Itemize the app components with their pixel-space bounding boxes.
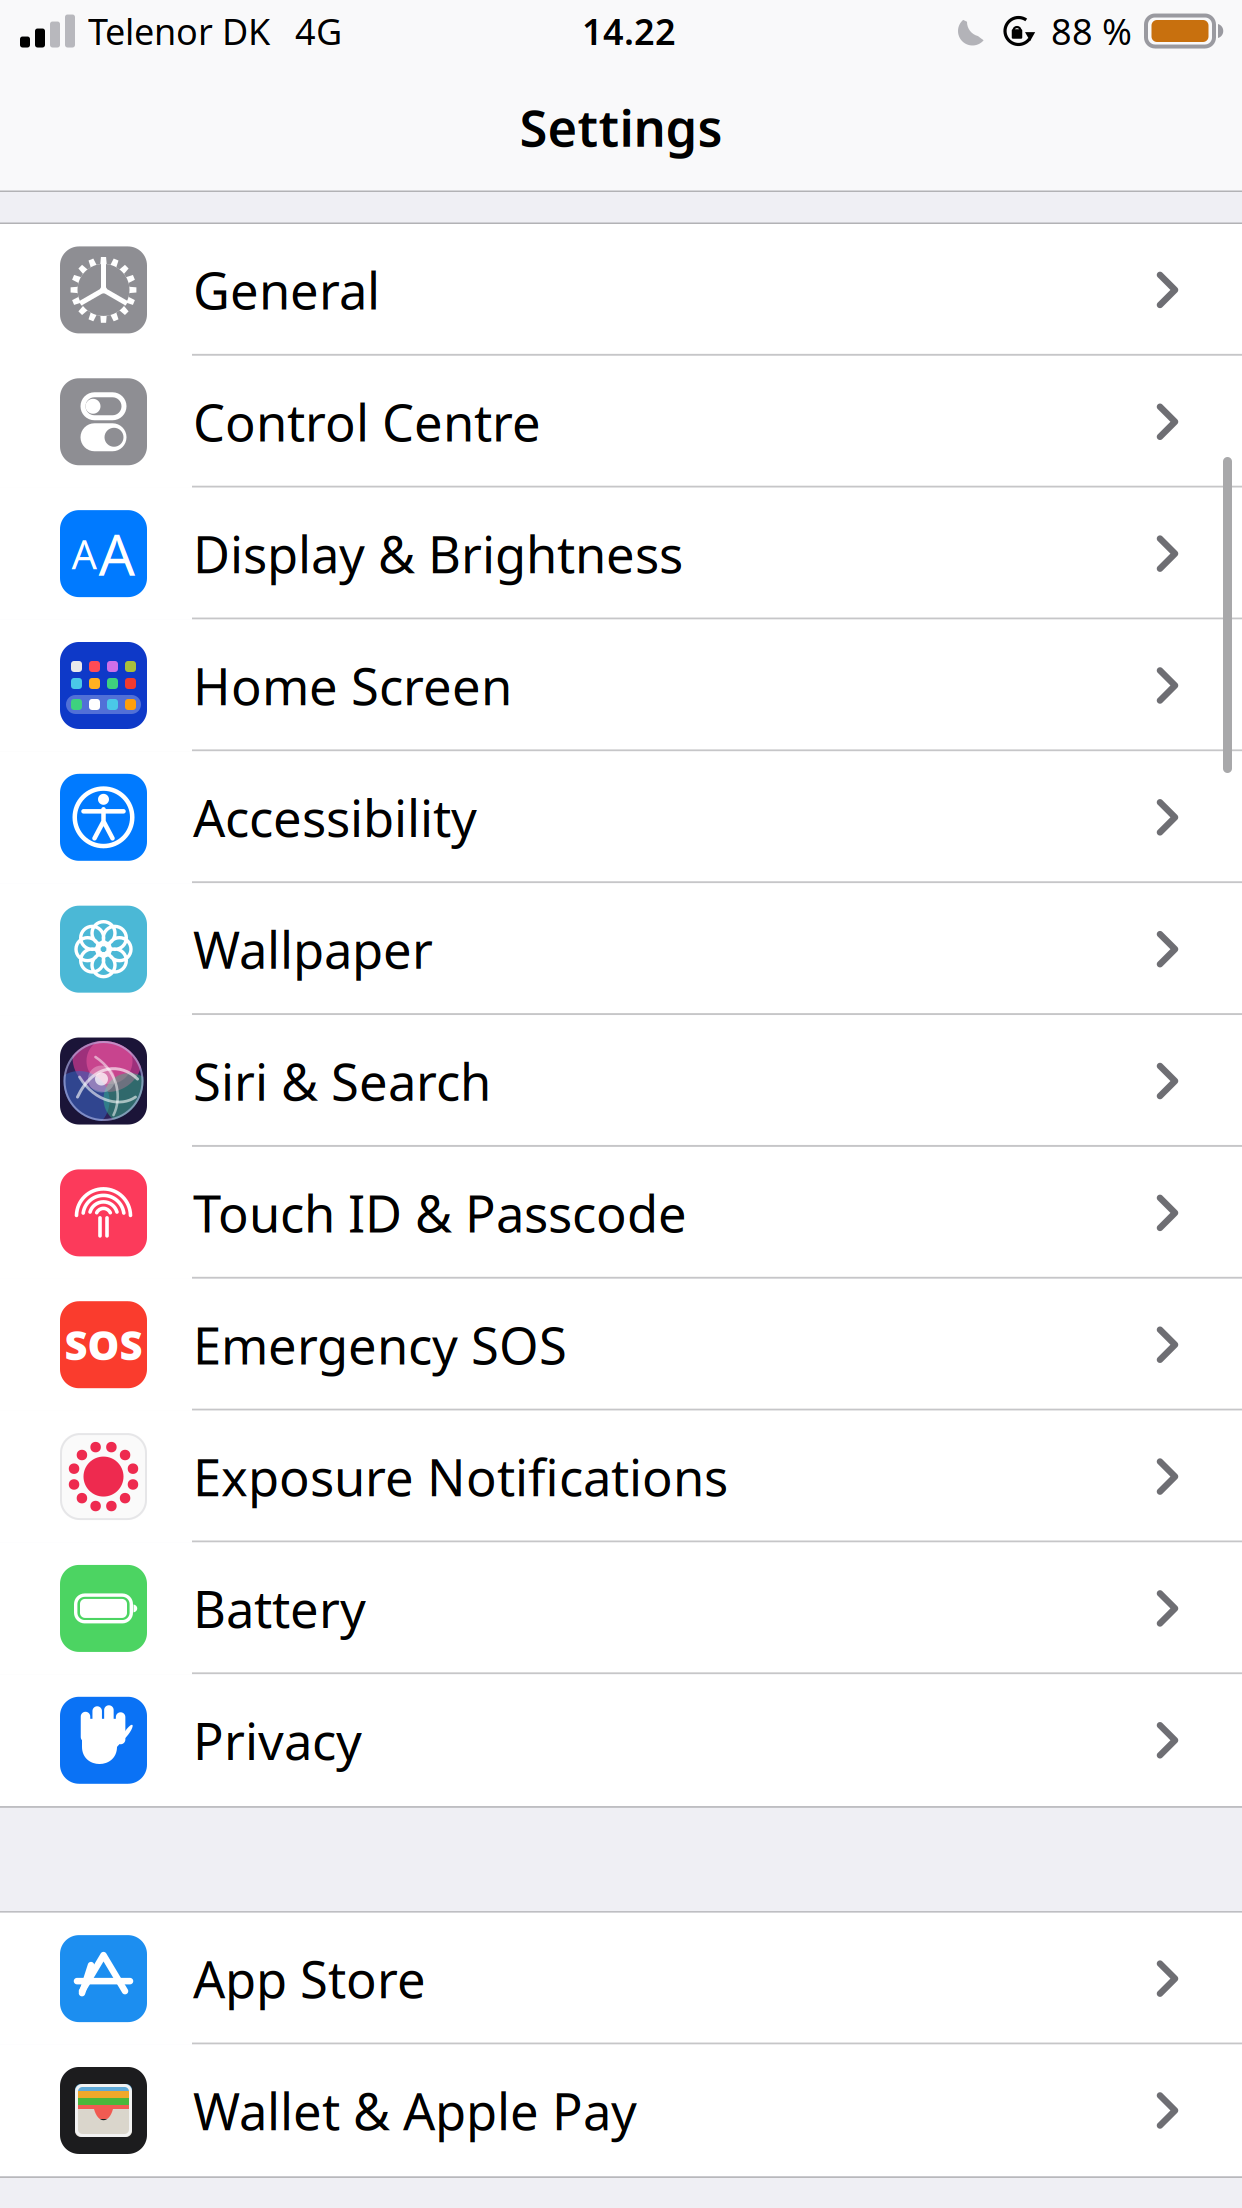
staticText: Siri & Search bbox=[193, 1047, 491, 1115]
staticText: Telenor DK bbox=[88, 7, 270, 55]
staticText: Settings bbox=[519, 93, 722, 161]
button[interactable]: Control Centre bbox=[0, 356, 1242, 488]
staticText: 4G bbox=[295, 7, 342, 55]
button[interactable]: Battery bbox=[0, 1542, 1242, 1674]
button[interactable]: SOS bbox=[0, 1279, 1242, 1411]
staticText: Privacy bbox=[193, 1707, 362, 1774]
staticText: SOS bbox=[64, 1318, 142, 1371]
staticText: Home Screen bbox=[193, 652, 512, 719]
staticText: General bbox=[193, 256, 380, 324]
staticText: App Store bbox=[193, 1945, 426, 2012]
button[interactable]: General bbox=[0, 224, 1242, 356]
button[interactable]: App Store bbox=[0, 1913, 1242, 2044]
button[interactable]: Wallpaper bbox=[0, 883, 1242, 1015]
button[interactable]: A bbox=[0, 488, 1242, 619]
button[interactable]: Touch ID & Passcode bbox=[0, 1147, 1242, 1279]
button[interactable]: Wallet & Apple Pay bbox=[0, 2044, 1242, 2176]
staticText: Control Centre bbox=[193, 388, 541, 455]
staticText: Battery bbox=[193, 1575, 366, 1642]
staticText: Exposure Notifications bbox=[193, 1443, 728, 1510]
button[interactable]: Exposure Notifications bbox=[0, 1411, 1242, 1542]
staticText: A bbox=[71, 527, 97, 580]
staticText: Wallpaper bbox=[193, 915, 433, 983]
button[interactable]: Home Screen bbox=[0, 620, 1242, 751]
staticText: Touch ID & Passcode bbox=[193, 1179, 687, 1246]
staticText: 14.22 bbox=[582, 7, 676, 55]
button[interactable]: Siri & Search bbox=[0, 1015, 1242, 1147]
staticText: Emergency SOS bbox=[193, 1311, 567, 1378]
staticText: Display & Brightness bbox=[193, 520, 683, 587]
staticText: Wallet & Apple Pay bbox=[193, 2077, 637, 2144]
staticText: 88 % bbox=[1051, 7, 1132, 55]
staticText: A bbox=[98, 516, 135, 592]
button[interactable]: Privacy bbox=[0, 1674, 1242, 1806]
button[interactable]: Accessibility bbox=[0, 751, 1242, 883]
staticText: Accessibility bbox=[193, 784, 477, 851]
